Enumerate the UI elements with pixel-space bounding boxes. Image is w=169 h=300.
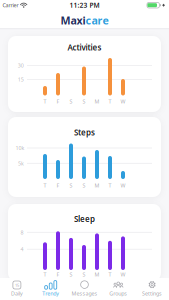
staticText: 5k [18, 160, 24, 167]
staticText: T [43, 98, 46, 105]
staticText: F [56, 271, 59, 278]
button[interactable]: Groups [101, 278, 135, 300]
staticText: Trendy [42, 290, 59, 297]
staticText: M [94, 271, 99, 278]
staticText: Activities [67, 42, 101, 53]
staticText: T [108, 271, 111, 278]
staticText: W [120, 271, 125, 278]
staticText: S [69, 271, 72, 278]
staticText: care [85, 13, 108, 27]
button[interactable]: Trendy [34, 278, 68, 300]
staticText: S [69, 98, 72, 105]
staticText: W [120, 182, 125, 189]
staticText: 4 [21, 246, 24, 253]
button[interactable]: Settings [135, 278, 169, 300]
staticText: T [43, 271, 46, 278]
staticText: 10k [15, 144, 24, 152]
staticText: M [94, 98, 99, 105]
staticText: Groups [109, 290, 127, 297]
staticText: T [108, 182, 111, 189]
staticText: M [94, 182, 99, 189]
button[interactable]: 15 [0, 278, 34, 300]
staticText: S [82, 271, 85, 278]
staticText: Messages [71, 290, 97, 297]
staticText: 15 [18, 76, 24, 83]
staticText: Steps [74, 127, 95, 138]
staticText: T [43, 182, 46, 189]
staticText: 11:23 PM [69, 1, 99, 10]
staticText: W [120, 98, 125, 105]
staticText: Daily [11, 290, 23, 297]
staticText: Carrier [2, 2, 18, 9]
staticText: Sleep [74, 214, 95, 224]
button[interactable]: Messages [68, 278, 101, 300]
staticText: S [82, 182, 85, 189]
staticText: 8 [21, 229, 24, 236]
staticText: T [108, 98, 111, 105]
staticText: F [56, 182, 59, 189]
staticText: S [82, 98, 85, 105]
staticText: 30 [18, 62, 24, 69]
staticText: F [56, 98, 59, 105]
staticText: Maxi [60, 13, 85, 27]
staticText: 15 [15, 282, 19, 288]
staticText: S [69, 182, 72, 189]
staticText: Settings [142, 290, 162, 297]
